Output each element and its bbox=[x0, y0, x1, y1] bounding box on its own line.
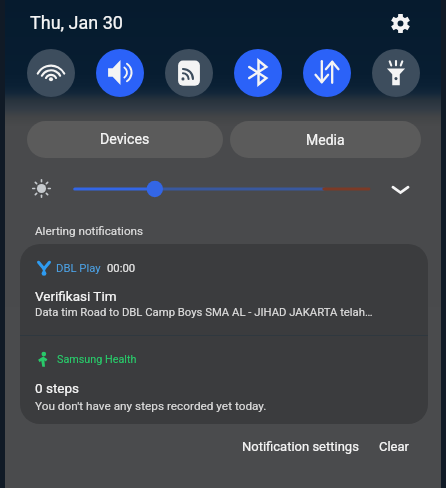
button[interactable]: Bluetooth bbox=[234, 49, 282, 97]
staticText: Samsung Health bbox=[57, 353, 137, 366]
button[interactable]: Wi-Fi bbox=[27, 49, 75, 97]
button[interactable]: Media bbox=[230, 121, 421, 158]
staticText: Alerting notifications bbox=[35, 224, 144, 238]
staticText: You don't have any steps recorded yet to… bbox=[35, 399, 267, 413]
staticText: Clear bbox=[379, 439, 409, 454]
staticText: 00:00 bbox=[107, 262, 136, 275]
button[interactable]: Smart View bbox=[165, 49, 213, 97]
staticText: Data tim Road to DBL Camp Boys SMA AL - … bbox=[35, 306, 373, 319]
button[interactable]: Flashlight bbox=[372, 49, 420, 97]
staticText: 0 steps bbox=[35, 380, 80, 396]
button[interactable]: Sound bbox=[96, 49, 144, 97]
button[interactable]: Clear bbox=[373, 433, 415, 460]
staticText: Notification settings bbox=[242, 439, 359, 454]
button[interactable]: Mobile data bbox=[303, 49, 351, 97]
button[interactable]: Devices bbox=[27, 121, 223, 158]
button[interactable]: Samsung Health bbox=[20, 336, 428, 424]
button[interactable]: Notification settings bbox=[236, 433, 365, 460]
staticText: Devices bbox=[100, 131, 150, 148]
button[interactable]: DBL Play bbox=[20, 244, 428, 335]
staticText: DBL Play bbox=[56, 262, 101, 275]
button[interactable]: Brightness bbox=[72, 181, 372, 197]
button[interactable]: Settings bbox=[382, 5, 418, 41]
staticText: Media bbox=[306, 132, 345, 148]
staticText: Thu, Jan 30 bbox=[30, 12, 123, 33]
staticText: Verifikasi Tim bbox=[35, 288, 117, 304]
button[interactable]: Expand brightness bbox=[388, 177, 413, 202]
